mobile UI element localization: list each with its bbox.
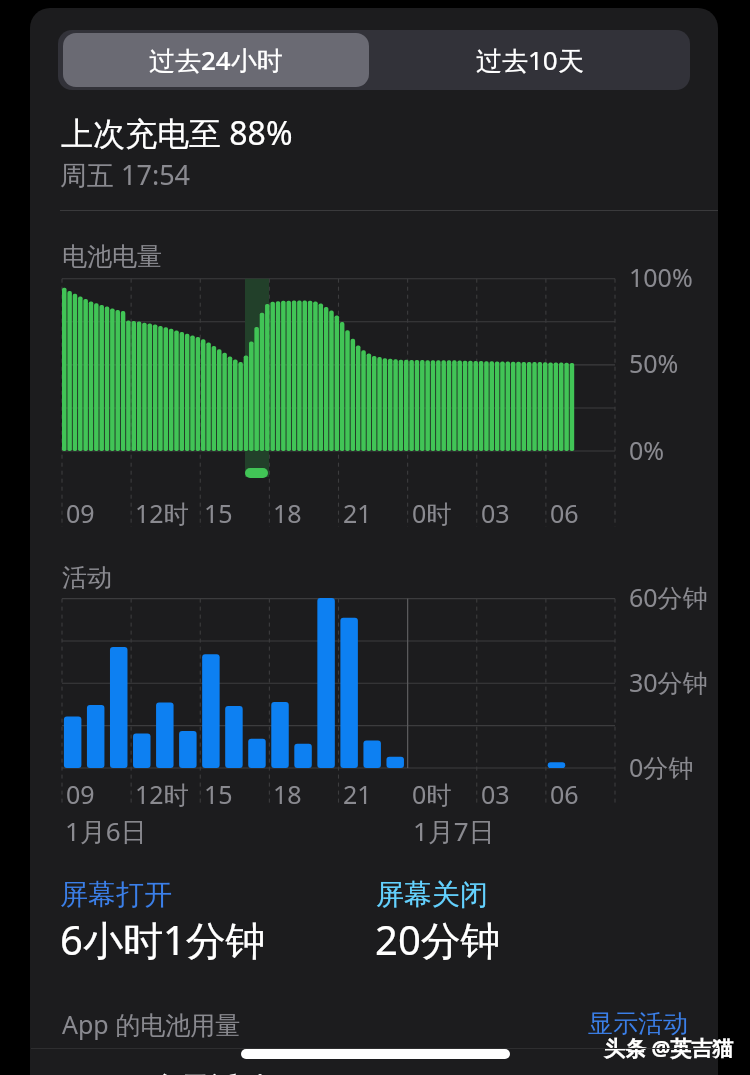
staticText: 06	[550, 777, 579, 811]
staticText: 18	[273, 777, 302, 811]
button[interactable]: 过去24小时	[63, 33, 369, 87]
staticText: 12时	[135, 496, 189, 530]
staticText: 头条 @英吉猫	[604, 1034, 734, 1063]
staticText: 全天活动	[150, 1069, 270, 1075]
staticText: 0时	[412, 496, 452, 530]
staticText: 上次充电至 88%	[61, 111, 293, 155]
staticText: 电池电量	[62, 241, 162, 272]
staticText: 18	[273, 496, 302, 530]
staticText: App 的电池用量	[62, 1007, 241, 1041]
staticText: 21	[343, 777, 372, 811]
staticText: 03	[481, 496, 510, 530]
staticText: 屏幕打开	[60, 877, 172, 912]
staticText: 6小时1分钟	[60, 912, 266, 967]
staticText: 15	[204, 496, 233, 530]
button[interactable]: 过去10天	[373, 33, 687, 87]
staticText: 20分钟	[375, 912, 501, 967]
staticText: 1月7日	[413, 813, 495, 849]
staticText: 50%	[629, 346, 679, 380]
staticText: 0%	[629, 433, 665, 467]
staticText: 0分钟	[629, 750, 694, 784]
staticText: 1月6日	[65, 813, 147, 849]
staticText: 12时	[135, 777, 189, 811]
staticText: 03	[481, 777, 510, 811]
staticText: 活动	[62, 562, 112, 593]
other: Home indicator	[241, 1049, 510, 1059]
button[interactable]: 显示活动	[588, 1008, 688, 1039]
staticText: 过去24小时	[149, 42, 283, 78]
staticText: 屏幕关闭	[376, 877, 488, 912]
staticText: 09	[66, 777, 95, 811]
staticText: 0时	[412, 777, 452, 811]
staticText: 显示活动	[588, 1008, 688, 1039]
staticText: 过去10天	[476, 42, 584, 78]
staticText: 30分钟	[629, 665, 708, 699]
staticText: 60分钟	[629, 580, 708, 614]
staticText: 100%	[629, 260, 693, 294]
staticText: 06	[550, 496, 579, 530]
staticText: 周五 17:54	[60, 156, 191, 193]
staticText: 09	[66, 496, 95, 530]
staticText: 21	[343, 496, 372, 530]
staticText: 15	[204, 777, 233, 811]
